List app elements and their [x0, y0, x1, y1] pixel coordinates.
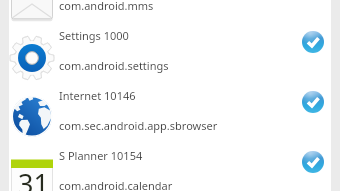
staticText: com.sec.android.app.sbrowser — [59, 118, 218, 133]
button[interactable]: Internet 10146 — [9, 85, 331, 145]
staticText: Settings 1000 — [59, 28, 129, 43]
staticText: Internet 10146 — [59, 88, 136, 103]
button[interactable]: Selected — [302, 91, 324, 113]
staticText: com.android.mms — [59, 0, 154, 13]
button[interactable]: Settings 1000 — [9, 25, 331, 85]
button[interactable]: Selected — [302, 151, 324, 173]
staticText: 31 — [18, 165, 49, 191]
staticText: S Planner 10154 — [59, 148, 143, 163]
button[interactable]: 31 — [9, 145, 331, 191]
button[interactable]: Selected — [302, 31, 324, 53]
staticText: com.android.calendar — [59, 178, 173, 191]
staticText: com.android.settings — [59, 58, 169, 73]
button[interactable]: Mms 10013 — [9, 0, 331, 25]
